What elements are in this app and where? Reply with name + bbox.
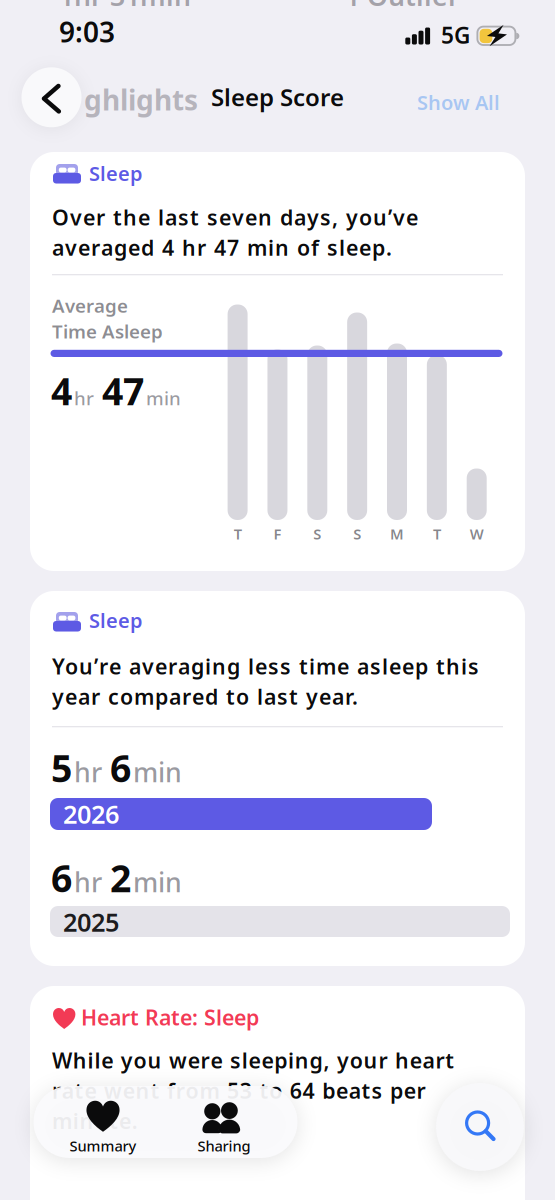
button[interactable]: Summary <box>55 1094 151 1156</box>
staticText: 2 <box>110 853 131 903</box>
staticText: W <box>470 524 484 543</box>
staticText: hr <box>74 386 94 410</box>
staticText: min <box>146 386 181 410</box>
button[interactable]: Search <box>436 1083 524 1171</box>
staticText: hr <box>74 754 102 790</box>
staticText: Summary <box>69 1136 136 1155</box>
staticText: 1 Outlier <box>345 0 460 13</box>
staticText: Average Time Asleep <box>52 293 163 344</box>
staticText: 5G <box>441 20 470 50</box>
staticText: Sleep <box>89 607 143 634</box>
staticText: You’re averaging less time asleep this y… <box>52 652 479 711</box>
staticText: min <box>133 754 182 790</box>
staticText: Heart Rate: Sleep <box>81 1003 259 1031</box>
staticText: 2026 <box>63 797 119 831</box>
staticText: hr <box>74 864 102 900</box>
staticText: min <box>133 864 182 900</box>
staticText: 1hr 31min <box>59 0 191 13</box>
button[interactable]: Sharing <box>176 1094 272 1156</box>
staticText: Over the last seven days, you’ve average… <box>52 203 418 262</box>
staticText: Sharing <box>197 1136 250 1155</box>
staticText: Sleep Score <box>211 81 344 113</box>
staticText: 6 <box>110 743 131 793</box>
staticText: ghlights <box>84 81 198 118</box>
staticText: T <box>234 524 242 543</box>
staticText: M <box>390 524 404 543</box>
staticText: 47 <box>102 366 144 416</box>
staticText: 5 <box>51 743 72 793</box>
staticText: S <box>353 524 361 543</box>
staticText: T <box>433 524 441 543</box>
staticText: 4 <box>51 366 72 416</box>
staticText: While you were sleeping, your heart rate… <box>52 1046 454 1135</box>
staticText: 2025 <box>63 905 119 939</box>
staticText: 9:03 <box>59 13 115 50</box>
staticText: S <box>313 524 321 543</box>
button[interactable]: Back <box>21 67 81 127</box>
staticText: 6 <box>51 853 72 903</box>
staticText: F <box>273 524 281 543</box>
staticText: Show All <box>417 89 500 116</box>
staticText: Sleep <box>89 160 143 187</box>
